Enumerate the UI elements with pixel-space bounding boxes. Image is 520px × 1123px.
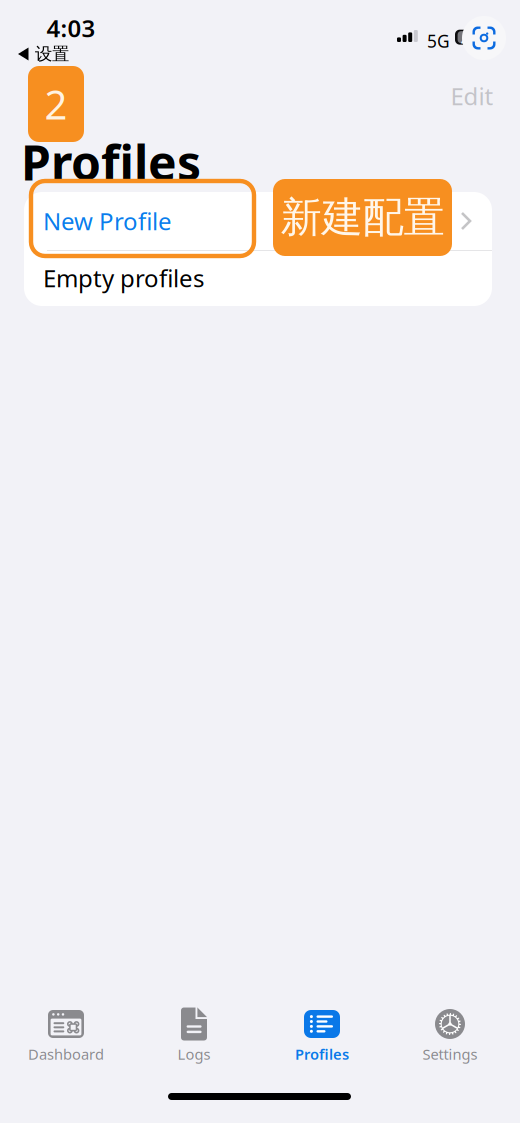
button[interactable]: Profiles: [258, 1006, 386, 1066]
staticText: New Profile: [43, 205, 172, 237]
staticText: 5G: [427, 29, 450, 52]
staticText: Profiles: [21, 130, 201, 194]
staticText: 4:03: [46, 12, 95, 44]
button[interactable]: Dashboard: [2, 1006, 130, 1066]
staticText: Profiles: [295, 1044, 349, 1064]
staticText: 新建配置: [280, 192, 444, 243]
staticText: Logs: [177, 1044, 210, 1064]
button[interactable]: 设置: [18, 44, 69, 64]
staticText: Edit: [450, 80, 493, 112]
button[interactable]: 新建配置: [273, 179, 452, 256]
staticText: 2: [44, 77, 67, 130]
staticText: 设置: [35, 43, 69, 65]
button[interactable]: Settings: [386, 1006, 514, 1066]
staticText: Settings: [422, 1044, 477, 1064]
staticText: Empty profiles: [43, 262, 204, 294]
button[interactable]: Logs: [130, 1006, 258, 1066]
staticText: Dashboard: [28, 1044, 104, 1064]
staticText: 48: [461, 31, 477, 49]
button[interactable]: New Profile: [24, 192, 492, 250]
button[interactable]: Edit: [440, 74, 504, 118]
